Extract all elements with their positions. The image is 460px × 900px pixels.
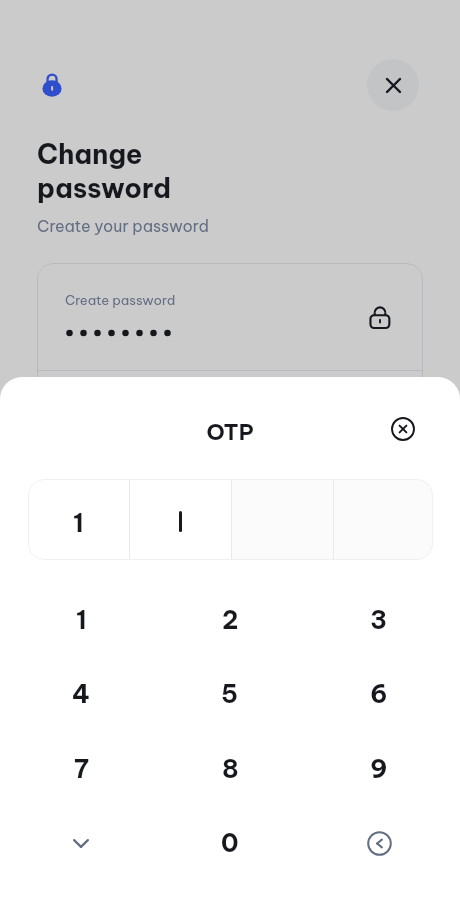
button[interactable]: Close OTP — [389, 415, 417, 443]
staticText: 1 — [73, 507, 84, 539]
staticText: Create password — [65, 292, 176, 309]
staticText: 8 — [222, 753, 239, 785]
button[interactable]: 4 — [34, 665, 128, 723]
button[interactable]: 5 — [183, 665, 277, 723]
button[interactable]: 1 — [34, 591, 128, 649]
staticText: 4 — [72, 678, 91, 710]
button[interactable] — [130, 479, 231, 560]
staticText: 0 — [221, 827, 239, 859]
button[interactable]: Create password — [37, 263, 423, 423]
staticText: 6 — [370, 678, 388, 710]
staticText: 9 — [370, 753, 388, 785]
button[interactable]: 9 — [332, 740, 426, 798]
staticText: 1 — [76, 604, 87, 636]
button[interactable]: 6 — [332, 665, 426, 723]
staticText: 2 — [222, 604, 239, 636]
button[interactable]: Delete — [332, 814, 426, 872]
button[interactable]: Hide keypad — [34, 814, 128, 872]
staticText: 3 — [370, 604, 388, 636]
button[interactable]: 7 — [34, 740, 128, 798]
button[interactable]: 3 — [332, 591, 426, 649]
staticText: OTP — [0, 418, 460, 446]
staticText: Create your password — [37, 216, 209, 236]
button[interactable]: 8 — [183, 740, 277, 798]
button[interactable]: 2 — [183, 591, 277, 649]
button[interactable]: 0 — [183, 814, 277, 872]
staticText: Change password — [37, 137, 171, 205]
staticText: 7 — [74, 753, 89, 785]
button[interactable]: Close — [367, 59, 419, 111]
button[interactable]: 1 — [28, 479, 129, 560]
staticText: 5 — [221, 678, 239, 710]
